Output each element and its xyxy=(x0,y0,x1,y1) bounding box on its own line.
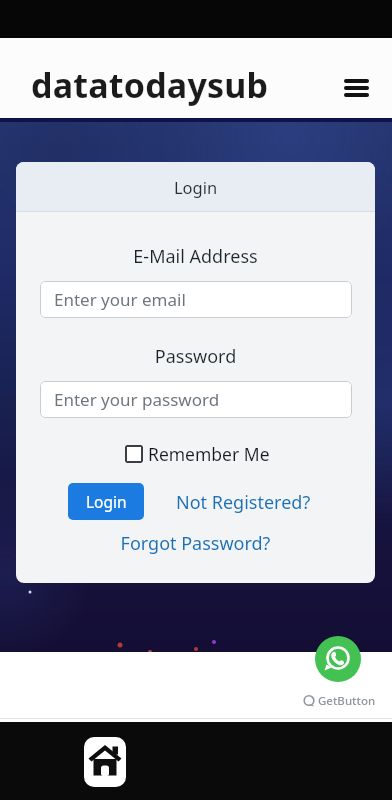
button[interactable] xyxy=(315,636,361,682)
staticText: Login xyxy=(16,176,375,198)
button[interactable]: Login xyxy=(68,483,144,520)
staticText: GetButton xyxy=(318,693,376,709)
staticText: datatodaysub xyxy=(31,62,269,108)
staticText: Enter your email xyxy=(54,288,186,311)
button[interactable] xyxy=(336,72,376,104)
staticText: Password xyxy=(16,344,375,369)
button[interactable]: GetButton xyxy=(303,693,376,709)
button[interactable] xyxy=(84,737,126,787)
button[interactable]: Remember Me xyxy=(125,442,270,466)
staticText: Remember Me xyxy=(148,442,270,466)
button[interactable]: Not Registered? xyxy=(176,490,311,515)
button[interactable]: Forgot Password? xyxy=(16,531,375,556)
staticText: Login xyxy=(86,491,127,512)
staticText: Enter your password xyxy=(54,388,220,411)
staticText: E-Mail Address xyxy=(16,244,375,269)
button[interactable]: Enter your email xyxy=(40,281,352,318)
button[interactable]: Enter your password xyxy=(40,381,352,418)
